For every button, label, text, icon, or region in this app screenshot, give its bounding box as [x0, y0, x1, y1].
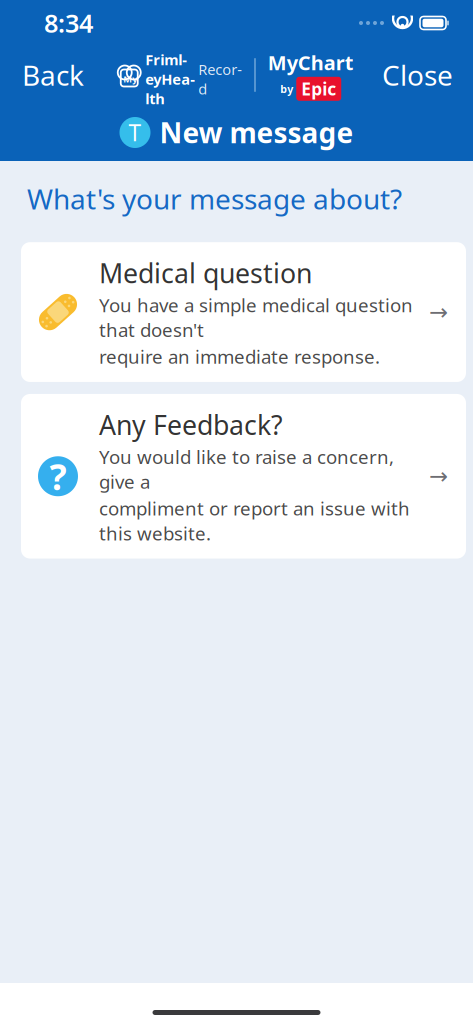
button[interactable]: ? — [21, 394, 466, 559]
staticText: You would like to raise a concern, give … — [99, 444, 394, 494]
staticText: MyChart — [268, 49, 354, 76]
staticText: What's your message about? — [27, 180, 402, 217]
staticText: FrimleyHealth — [145, 50, 195, 108]
staticText: Close — [382, 56, 453, 94]
staticText: require an immediate response. — [99, 344, 380, 369]
staticText: compliment or report an issue with this … — [99, 496, 410, 546]
button[interactable]: Close — [362, 48, 473, 102]
staticText: Medical question — [99, 255, 312, 291]
staticText: Back — [22, 56, 84, 94]
staticText: by — [280, 82, 293, 96]
staticText: → — [429, 463, 448, 489]
staticText: My — [123, 73, 137, 85]
staticText: Epic — [301, 77, 336, 100]
button[interactable]: Medical question — [21, 242, 466, 382]
staticText: 8:34 — [44, 6, 93, 40]
staticText: You have a simple medical question that … — [99, 293, 413, 342]
staticText: ? — [49, 452, 66, 500]
button[interactable]: Back — [0, 48, 106, 102]
staticText: T — [128, 117, 141, 147]
staticText: New message — [159, 114, 353, 151]
staticText: Record — [198, 59, 242, 98]
staticText: → — [429, 299, 448, 325]
staticText: Any Feedback? — [99, 407, 283, 442]
